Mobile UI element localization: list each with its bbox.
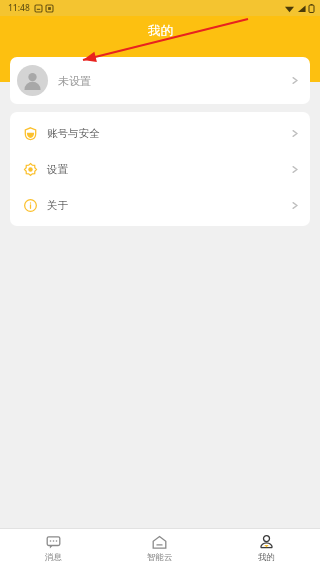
button[interactable]: 关于 (10, 187, 310, 223)
staticText: 账号与安全 (47, 127, 100, 140)
button[interactable]: 消息 (0, 535, 106, 563)
staticText: 未设置 (58, 74, 91, 88)
button[interactable]: 设置 (10, 151, 310, 187)
staticText: 我的 (258, 552, 275, 563)
button[interactable]: 我的 (213, 535, 320, 563)
staticText: 11:48 (8, 2, 30, 14)
staticText: 智能云 (147, 552, 173, 563)
staticText: 关于 (47, 199, 68, 212)
staticText: 消息 (45, 552, 62, 563)
button[interactable]: 未设置 (10, 57, 310, 104)
button[interactable]: 智能云 (106, 535, 213, 563)
staticText: 我的 (148, 23, 173, 39)
button[interactable]: 账号与安全 (10, 115, 310, 151)
staticText: 设置 (47, 163, 68, 176)
